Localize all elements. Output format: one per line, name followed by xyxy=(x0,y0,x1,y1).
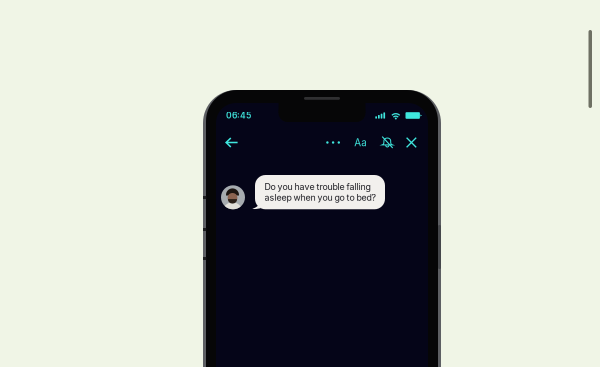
staticText: Aa xyxy=(354,136,367,149)
button[interactable]: Mute notifications xyxy=(378,133,396,152)
staticText: Do you have trouble falling asleep when … xyxy=(264,181,375,203)
staticText: 06:45 xyxy=(226,110,251,121)
button[interactable]: More options xyxy=(323,134,343,151)
button[interactable]: Back xyxy=(222,134,242,151)
button[interactable]: Close xyxy=(403,134,420,151)
button[interactable]: Text size xyxy=(351,133,370,152)
